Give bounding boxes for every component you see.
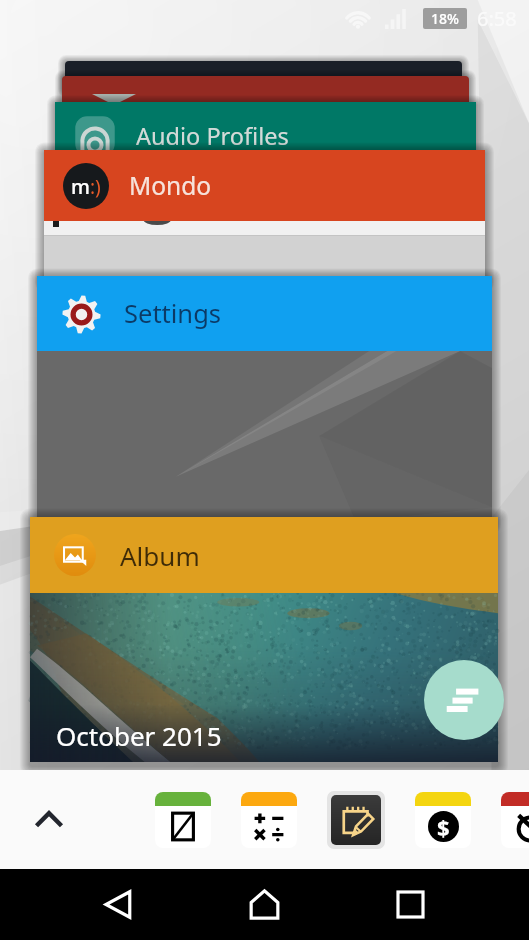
button[interactable]: Small app [241,792,297,848]
button[interactable]: Small app [155,792,211,848]
staticText: 18% [431,9,459,28]
button[interactable]: m [44,150,485,221]
button[interactable]: Back [82,876,154,933]
staticText: October 2015 [56,718,222,753]
button[interactable]: Album [30,517,498,593]
button[interactable]: Small app [501,792,529,848]
staticText: :) [90,174,101,200]
button[interactable]: Recents [374,876,446,933]
staticText: Album [120,538,200,573]
button[interactable]: Notes [331,795,381,845]
button[interactable]: Recent app [65,61,462,86]
button[interactable]: Sort photos [424,660,504,740]
staticText: Settings [124,296,222,331]
button[interactable]: Small app [415,792,471,848]
button[interactable]: Recent app [62,76,469,112]
staticText: 6:58 [477,5,517,32]
staticText: m [71,173,90,200]
button[interactable]: Settings [37,276,492,351]
button[interactable]: Expand small apps [23,794,74,845]
button[interactable]: Audio Profiles [55,102,476,170]
staticText: Audio Profiles [136,120,289,152]
staticText: Mondo [129,169,212,202]
staticText: $ [437,812,450,842]
button[interactable]: Home [228,876,300,933]
